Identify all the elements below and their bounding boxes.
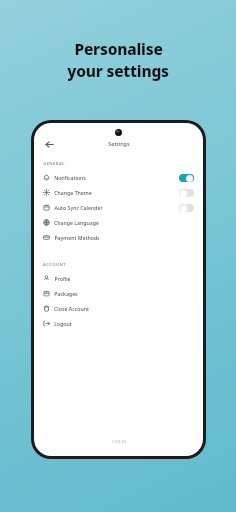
staticText: 1.0.0.10: [111, 439, 126, 444]
button[interactable]: Change Theme: [34, 185, 203, 200]
button[interactable]: Close Account: [34, 301, 203, 316]
staticText: ACCOUNT: [43, 262, 66, 268]
staticText: Logout: [54, 320, 72, 327]
staticText: Notifications: [54, 174, 86, 181]
staticText: Settings: [108, 140, 130, 147]
button[interactable]: Notifications: [179, 174, 194, 182]
button[interactable]: Notifications: [34, 170, 203, 185]
button[interactable]: Change Language: [34, 215, 203, 230]
button[interactable]: Change Theme: [179, 189, 194, 197]
staticText: Change Language: [54, 219, 99, 226]
staticText: Payment Methods: [54, 234, 100, 241]
button[interactable]: Auto Sync Calender: [34, 200, 203, 215]
staticText: Profile: [54, 275, 71, 282]
button[interactable]: Profile: [34, 271, 203, 286]
button[interactable]: Logout: [34, 316, 203, 331]
staticText: Auto Sync Calender: [54, 204, 103, 211]
staticText: Personalise: [74, 38, 163, 59]
staticText: Packages: [54, 290, 78, 297]
button[interactable]: Back: [42, 137, 56, 151]
staticText: Close Account: [54, 305, 89, 312]
button[interactable]: Payment Methods: [34, 230, 203, 245]
button[interactable]: Auto Sync Calender: [179, 204, 194, 212]
staticText: Change Theme: [54, 189, 92, 196]
staticText: your settings: [67, 60, 169, 81]
button[interactable]: Packages: [34, 286, 203, 301]
staticText: GENERAL: [43, 161, 65, 167]
